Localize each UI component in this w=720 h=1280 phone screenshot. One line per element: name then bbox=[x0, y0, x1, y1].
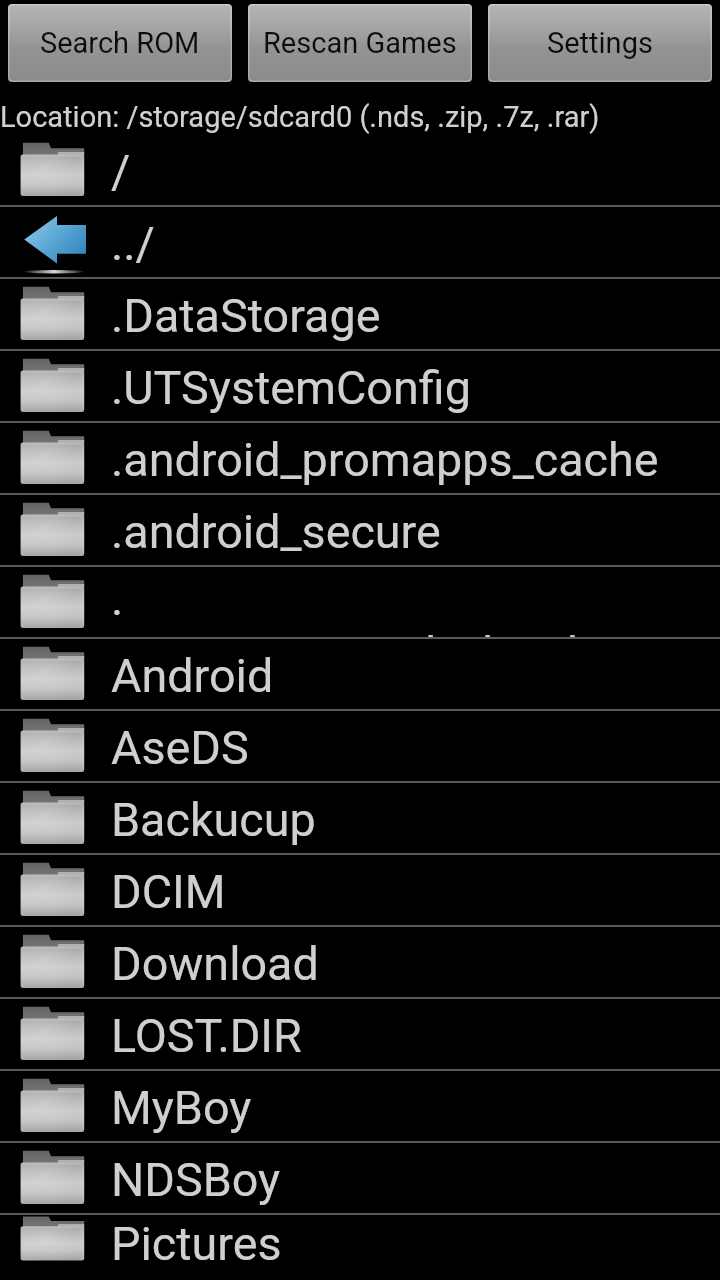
button[interactable]: Rescan Games bbox=[248, 4, 472, 82]
button[interactable]: / bbox=[0, 135, 720, 207]
staticText: Location: /storage/sdcard0 (.nds, .zip, … bbox=[0, 100, 600, 134]
other: Go to parent folder bbox=[20, 211, 86, 273]
staticText: . estrongs_recycle_bin_long_name bbox=[111, 572, 720, 637]
button[interactable]: Settings bbox=[488, 4, 712, 82]
staticText: .android_secure bbox=[111, 505, 441, 560]
staticText: .UTSystemConfig bbox=[111, 361, 471, 416]
button[interactable]: NDSBoy bbox=[0, 1143, 720, 1215]
button[interactable]: AseDS bbox=[0, 711, 720, 783]
staticText: LOST.DIR bbox=[111, 1009, 302, 1064]
button[interactable]: Android bbox=[0, 639, 720, 711]
button[interactable]: . estrongs_recycle_bin_long_name bbox=[0, 567, 720, 639]
staticText: ../ bbox=[111, 217, 155, 272]
staticText: Pictures bbox=[111, 1217, 282, 1263]
button[interactable]: Download bbox=[0, 927, 720, 999]
staticText: Backucup bbox=[111, 793, 316, 848]
staticText: AseDS bbox=[111, 721, 249, 776]
button[interactable]: .DataStorage bbox=[0, 279, 720, 351]
button[interactable]: DCIM bbox=[0, 855, 720, 927]
staticText: Rescan Games bbox=[263, 26, 457, 60]
button[interactable]: MyBoy bbox=[0, 1071, 720, 1143]
button[interactable]: LOST.DIR bbox=[0, 999, 720, 1071]
button[interactable]: Search ROM bbox=[8, 4, 232, 82]
button[interactable]: .android_secure bbox=[0, 495, 720, 567]
staticText: Android bbox=[111, 649, 274, 704]
staticText: Settings bbox=[547, 26, 653, 60]
button[interactable]: Go to parent folder bbox=[0, 207, 720, 279]
staticText: .android_promapps_cache bbox=[111, 433, 659, 488]
staticText: .DataStorage bbox=[111, 289, 381, 344]
staticText: Search ROM bbox=[40, 26, 200, 60]
staticText: NDSBoy bbox=[111, 1153, 281, 1208]
button[interactable]: .android_promapps_cache bbox=[0, 423, 720, 495]
button[interactable]: Backucup bbox=[0, 783, 720, 855]
staticText: / bbox=[111, 145, 131, 200]
staticText: MyBoy bbox=[111, 1081, 252, 1136]
button[interactable]: Pictures bbox=[0, 1215, 720, 1263]
button[interactable]: .UTSystemConfig bbox=[0, 351, 720, 423]
staticText: DCIM bbox=[111, 865, 226, 920]
staticText: Download bbox=[111, 937, 319, 992]
